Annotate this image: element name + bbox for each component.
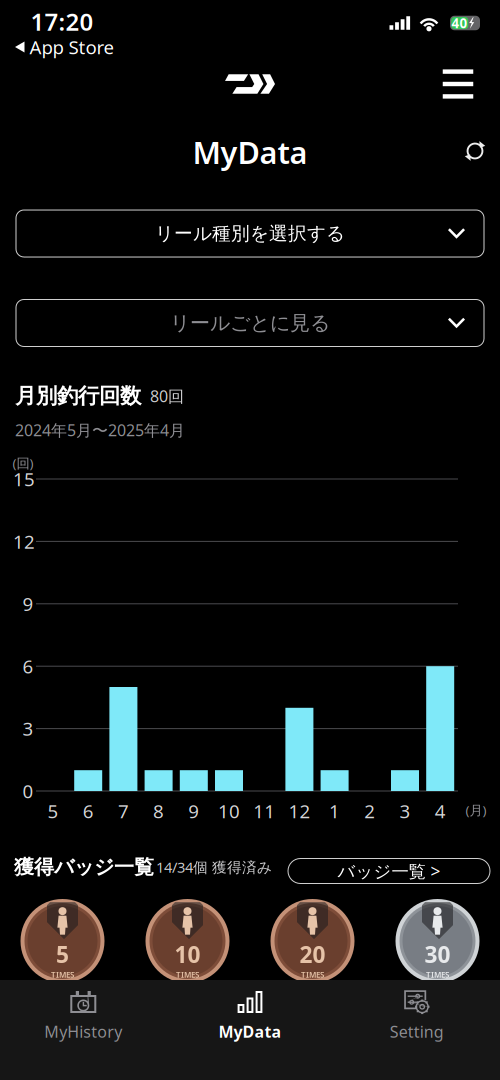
staticText: 9	[188, 799, 199, 823]
staticText: 9	[22, 591, 33, 616]
staticText: 3	[22, 716, 33, 741]
staticText: 11	[253, 799, 275, 823]
staticText: 5	[56, 939, 69, 969]
staticText: 20	[299, 939, 325, 969]
staticText: Setting	[390, 1021, 444, 1042]
staticText: 8	[153, 799, 164, 823]
staticText: 14/34個 獲得済み	[156, 857, 272, 877]
staticText: 12	[13, 529, 35, 554]
staticText: 1	[329, 799, 340, 823]
staticText: リール種別を選択する	[155, 222, 345, 245]
staticText: TIMES	[51, 969, 74, 980]
staticText: 15	[13, 467, 35, 491]
staticText: (月)	[465, 801, 486, 819]
button[interactable]: バッジ一覧 >	[288, 858, 490, 883]
button[interactable]: App Store	[15, 36, 135, 58]
staticText: MyData	[218, 1021, 281, 1042]
staticText: 6	[83, 799, 94, 823]
staticText: 10	[218, 799, 240, 823]
staticText: 5	[47, 799, 58, 823]
staticText: 17:20	[30, 6, 93, 37]
staticText: リールごとに見る	[170, 311, 330, 335]
staticText: 3	[399, 799, 410, 823]
staticText: 0	[22, 779, 33, 803]
staticText: バッジ一覧 >	[337, 859, 440, 882]
staticText: 7	[118, 799, 129, 823]
staticText: 6	[22, 654, 33, 679]
staticText: MyData	[192, 132, 307, 172]
staticText: MyHistory	[44, 1021, 122, 1042]
staticText: 月別釣行回数	[15, 383, 141, 409]
button[interactable]: MyHistory	[0, 990, 167, 1040]
staticText: 40	[451, 14, 467, 32]
staticText: 2	[364, 799, 375, 823]
button[interactable]: Refresh	[453, 129, 497, 173]
staticText: App Store	[29, 35, 114, 59]
staticText: 2024年5月〜2025年4月	[15, 419, 185, 441]
staticText: TIMES	[426, 969, 449, 980]
button[interactable]: Menu	[432, 58, 484, 110]
button[interactable]: リール種別を選択する	[16, 210, 484, 257]
staticText: 80回	[150, 385, 184, 407]
staticText: 10	[174, 939, 200, 969]
staticText: 30	[424, 939, 450, 969]
staticText: 獲得バッジ一覧	[14, 855, 154, 879]
button[interactable]: リールごとに見る	[16, 299, 484, 346]
staticText: 12	[288, 799, 310, 823]
button[interactable]: MyData	[167, 990, 333, 1040]
staticText: TIMES	[301, 969, 324, 980]
button[interactable]: Setting	[333, 990, 500, 1040]
staticText: (回)	[12, 454, 33, 472]
staticText: 4	[435, 799, 446, 823]
staticText: TIMES	[176, 969, 199, 980]
